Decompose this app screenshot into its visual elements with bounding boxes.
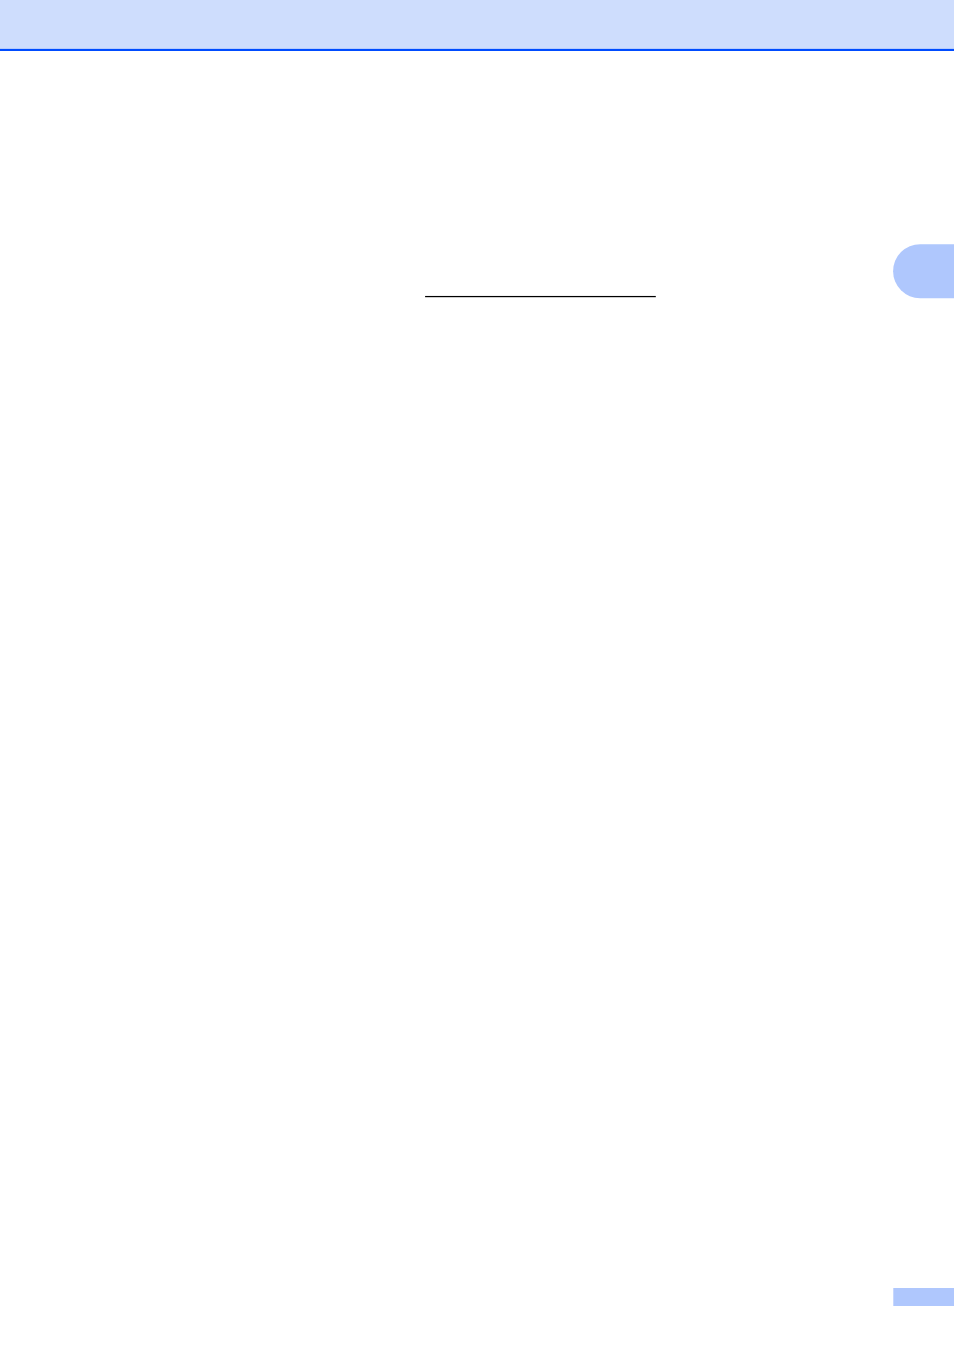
button[interactable]: Section tab — [893, 244, 954, 298]
button[interactable]: Page number — [893, 1288, 954, 1306]
